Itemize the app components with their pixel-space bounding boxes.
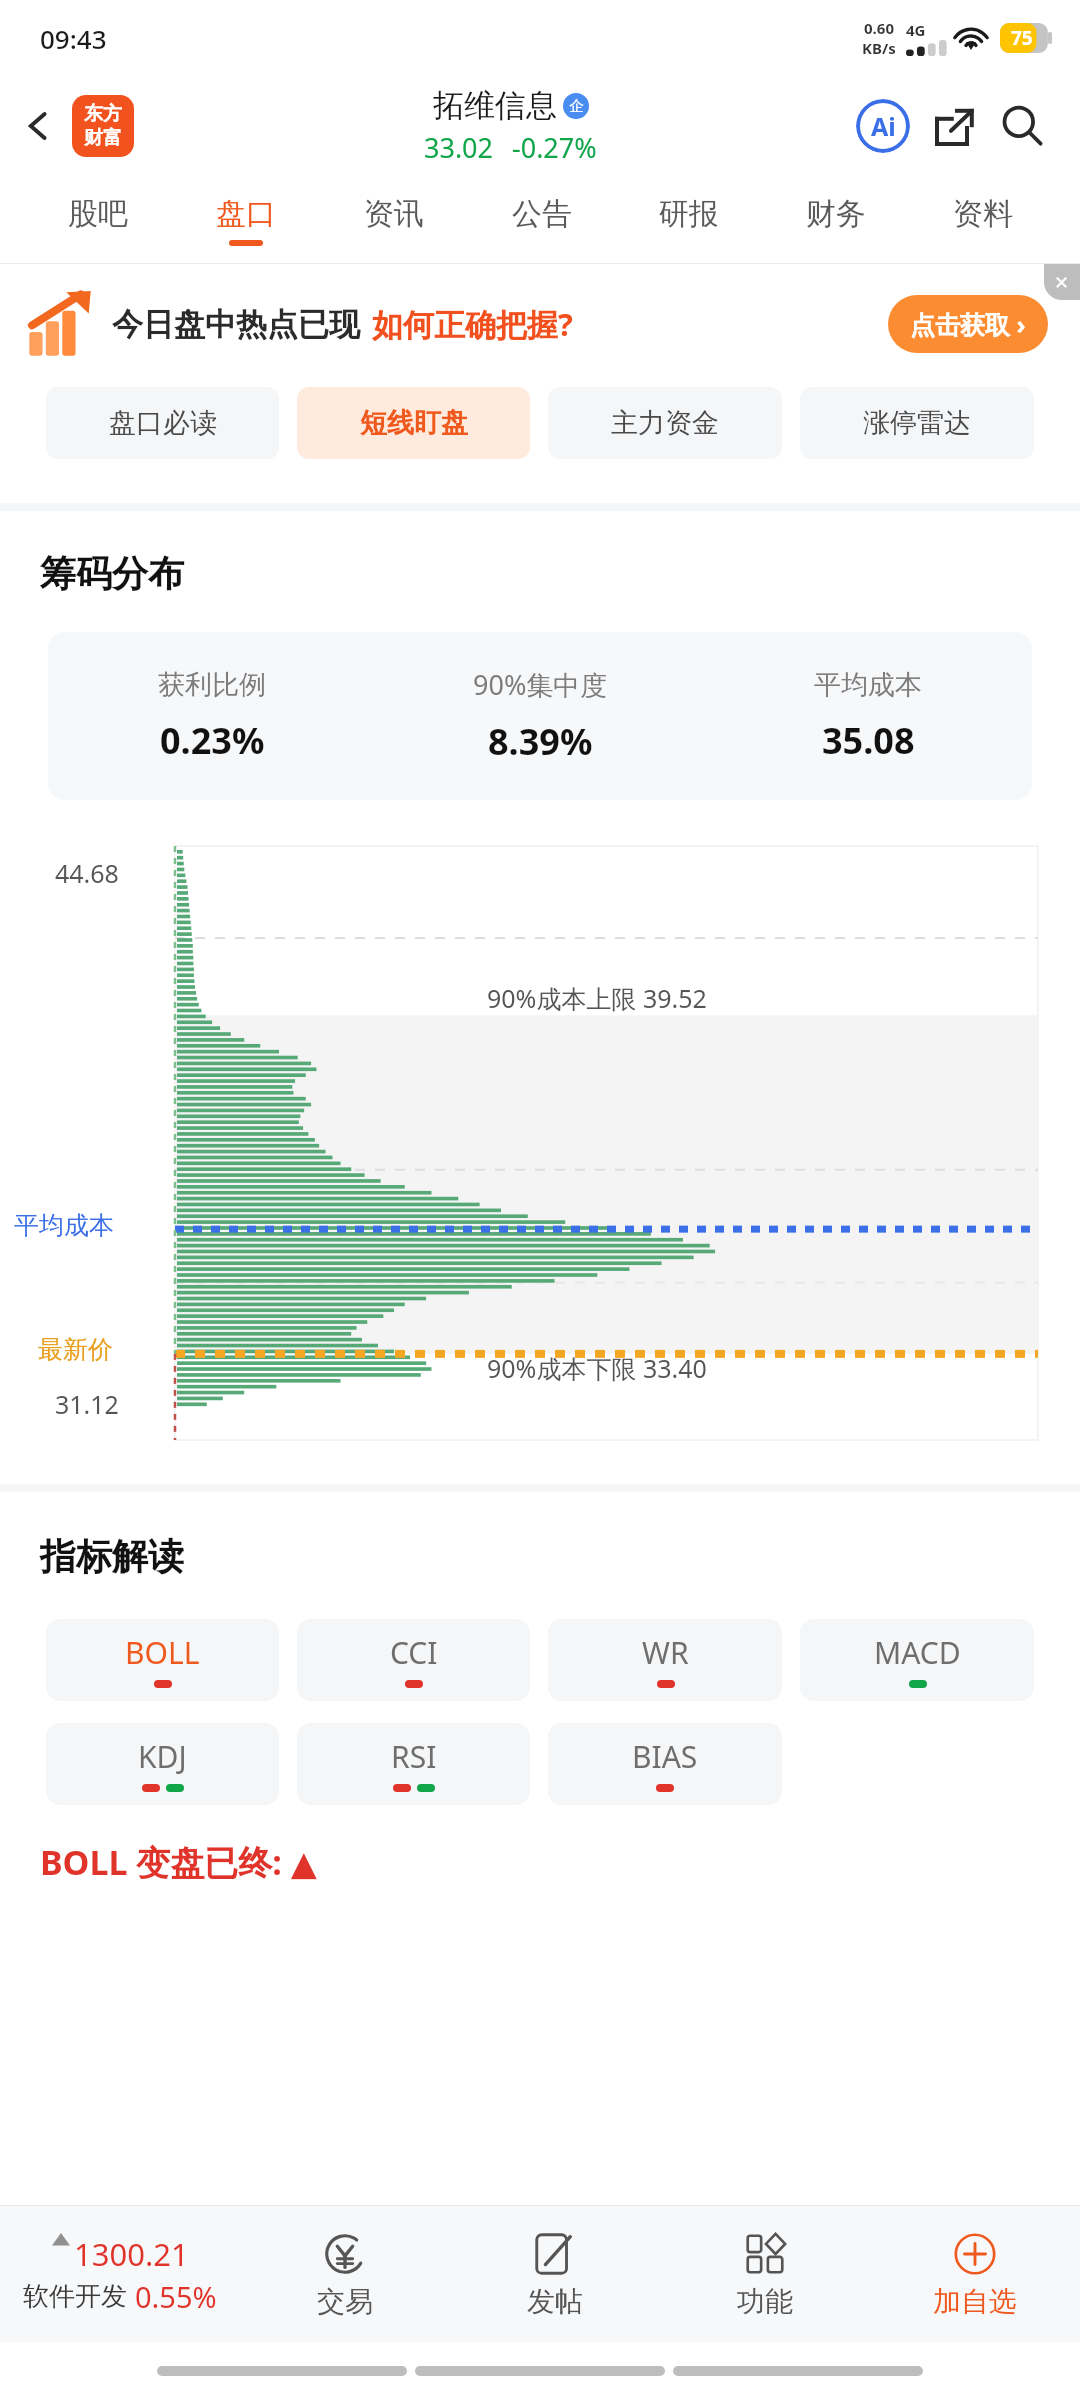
staticText: -0.27% [512, 129, 597, 166]
staticText: MACD [874, 1632, 961, 1673]
button[interactable]: 盘口必读 [46, 387, 279, 459]
staticText: 点击获取 › [910, 307, 1026, 341]
button[interactable]: RSI [297, 1723, 530, 1805]
button[interactable]: MACD [800, 1619, 1034, 1701]
button[interactable]: 资料 [909, 176, 1056, 264]
button[interactable]: 财务 [762, 176, 909, 264]
button[interactable]: AI assistant [852, 95, 914, 157]
staticText: 44.68 [55, 856, 119, 890]
button[interactable]: 点击获取 › [888, 295, 1048, 353]
staticText: 获利比例 [158, 668, 266, 702]
staticText: 平均成本 [14, 1210, 114, 1241]
staticText: 指标解读 [40, 1534, 184, 1579]
staticText: 90%成本上限 39.52 [487, 981, 707, 1015]
button[interactable]: 主力资金 [548, 387, 782, 459]
staticText: 财务 [806, 195, 866, 233]
button[interactable]: East Money [72, 95, 134, 157]
staticText: KDJ [138, 1736, 187, 1777]
staticText: 90%集中度 [473, 666, 608, 703]
staticText: 筹码分布 [40, 551, 184, 596]
staticText: 软件开发 [23, 2280, 127, 2313]
button[interactable]: 1300.21 [0, 2206, 240, 2342]
button[interactable]: 功能 [660, 2206, 870, 2342]
staticText: 财富 [84, 126, 122, 150]
staticText: 交易 [317, 2284, 373, 2319]
button[interactable]: 资讯 [320, 176, 468, 264]
button[interactable]: 股吧 [24, 176, 172, 264]
staticText: 31.12 [55, 1387, 119, 1421]
staticText: BIAS [632, 1736, 698, 1777]
staticText: 拓维信息 [433, 86, 557, 125]
staticText: Ai [871, 109, 896, 143]
button[interactable]: Share [924, 95, 986, 157]
button[interactable]: 今日盘中热点已现 [0, 264, 1080, 384]
staticText: 如何正确把握? [372, 303, 573, 345]
button[interactable]: Search [992, 95, 1054, 157]
staticText: 短线盯盘 [360, 406, 468, 440]
staticText: 0.55% [135, 2277, 217, 2316]
staticText: 主力资金 [611, 406, 719, 440]
button[interactable]: 涨停雷达 [800, 387, 1034, 459]
staticText: 资料 [953, 195, 1013, 233]
staticText: 涨停雷达 [863, 406, 971, 440]
staticText: 1300.21 [74, 2233, 189, 2275]
staticText: BOLL 变盘已终: ▲ [40, 1839, 317, 1885]
button[interactable]: 公告 [468, 176, 615, 264]
staticText: 功能 [737, 2284, 793, 2319]
button[interactable]: 获利比例 [48, 632, 1032, 800]
button[interactable]: 交易 [240, 2206, 450, 2342]
button[interactable]: Back [10, 98, 66, 154]
staticText: 资讯 [364, 195, 424, 233]
staticText: 盘口 [216, 195, 276, 233]
staticText: 东方 [84, 102, 122, 126]
button[interactable]: 发帖 [450, 2206, 660, 2342]
button[interactable]: BIAS [548, 1723, 782, 1805]
staticText: CCI [390, 1632, 438, 1673]
button[interactable]: 加自选 [870, 2206, 1080, 2342]
button[interactable]: KDJ [46, 1723, 279, 1805]
staticText: 8.39% [488, 717, 593, 766]
staticText: BOLL [125, 1632, 200, 1673]
staticText: 平均成本 [814, 668, 922, 702]
staticText: 75 [1011, 25, 1033, 51]
staticText: 0.60 [864, 18, 894, 38]
staticText: RSI [391, 1736, 437, 1777]
staticText: WR [642, 1632, 689, 1673]
button[interactable]: 盘口 [172, 176, 320, 264]
button[interactable]: Close ad [1044, 264, 1080, 300]
staticText: 0.23% [160, 716, 265, 765]
button[interactable]: WR [548, 1619, 782, 1701]
staticText: KB/s [862, 38, 896, 58]
button[interactable]: BOLL [46, 1619, 279, 1701]
button[interactable]: 研报 [615, 176, 762, 264]
staticText: 35.08 [822, 716, 915, 765]
staticText: 盘口必读 [109, 406, 217, 440]
staticText: 企 [569, 97, 584, 116]
staticText: 今日盘中热点已现 [112, 305, 360, 344]
staticText: 研报 [659, 195, 719, 233]
staticText: 90%成本下限 33.40 [487, 1351, 707, 1385]
button[interactable]: CCI [297, 1619, 530, 1701]
staticText: 最新价 [38, 1334, 113, 1365]
staticText: 33.02 [424, 129, 494, 166]
staticText: 加自选 [933, 2284, 1017, 2319]
staticText: 发帖 [527, 2284, 583, 2319]
staticText: 股吧 [68, 195, 128, 233]
button[interactable]: 短线盯盘 [297, 387, 530, 459]
staticText: ✕ [1054, 272, 1070, 293]
staticText: 09:43 [40, 21, 107, 56]
staticText: 4G [906, 20, 926, 40]
staticText: 公告 [512, 195, 572, 233]
